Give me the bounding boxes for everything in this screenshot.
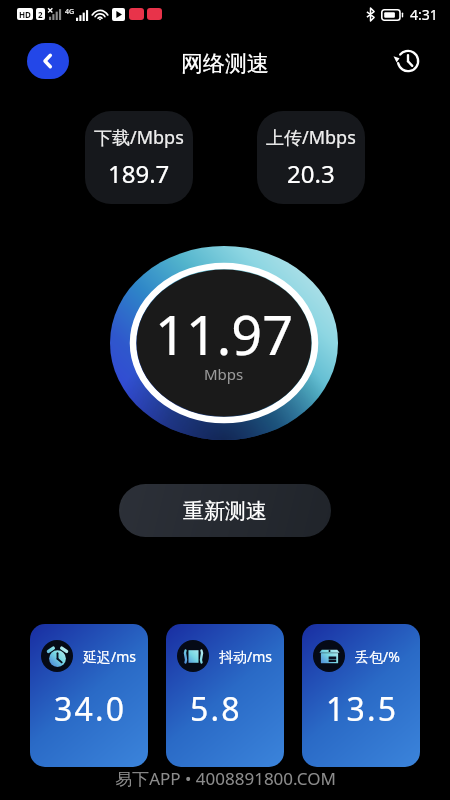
staticText: 上传/Mbps bbox=[266, 125, 356, 150]
staticText: 5.8 bbox=[190, 687, 242, 731]
button[interactable]: 上传/Mbps bbox=[257, 111, 365, 204]
button[interactable]: Back bbox=[27, 43, 69, 79]
staticText: 网络测速 bbox=[181, 50, 269, 78]
staticText: 丢包/% bbox=[355, 647, 400, 666]
staticText: 189.7 bbox=[108, 157, 170, 190]
button[interactable]: 重新测速 bbox=[119, 484, 331, 537]
staticText: 2 bbox=[38, 9, 43, 20]
staticText: 20.3 bbox=[287, 157, 335, 190]
staticText: 4G bbox=[65, 7, 75, 17]
staticText: 34.0 bbox=[54, 687, 127, 731]
button[interactable]: 下载/Mbps bbox=[85, 111, 193, 204]
staticText: 重新测速 bbox=[183, 498, 267, 524]
staticText: Mbps bbox=[204, 364, 244, 384]
staticText: 抖动/ms bbox=[219, 647, 273, 666]
staticText: 13.5 bbox=[326, 687, 399, 731]
staticText: 延迟/ms bbox=[83, 647, 137, 666]
staticText: HD bbox=[19, 9, 31, 20]
button[interactable]: 延迟/ms bbox=[30, 624, 148, 767]
button[interactable]: 丢包/% bbox=[302, 624, 420, 767]
button[interactable]: History bbox=[388, 41, 428, 81]
staticText: 易下APP • 4008891800.COM bbox=[115, 767, 336, 790]
staticText: 11.97 bbox=[155, 297, 294, 371]
button[interactable]: 抖动/ms bbox=[166, 624, 284, 767]
staticText: 下载/Mbps bbox=[94, 125, 184, 150]
staticText: 4:31 bbox=[410, 5, 438, 24]
